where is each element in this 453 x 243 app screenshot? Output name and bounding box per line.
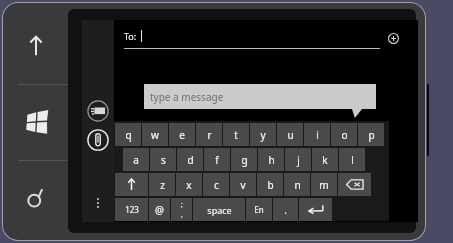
staticText: e	[179, 128, 185, 142]
staticText: v	[240, 178, 246, 192]
staticText: f	[215, 153, 219, 167]
button[interactable]: k	[312, 148, 338, 171]
staticText: w	[151, 128, 159, 142]
button[interactable]: s	[150, 148, 176, 171]
staticText: k	[322, 153, 328, 167]
staticText: s	[161, 153, 166, 167]
button[interactable]: To:	[114, 26, 450, 54]
button[interactable]: h	[258, 148, 284, 171]
button[interactable]: a	[123, 148, 149, 171]
staticText: q	[125, 128, 132, 142]
button[interactable]: Add contact	[384, 29, 402, 47]
button[interactable]: Messaging	[85, 98, 111, 124]
staticText: 123	[125, 204, 139, 215]
button[interactable]: y	[250, 123, 276, 146]
button[interactable]: type a message	[144, 84, 376, 109]
staticText: p	[368, 128, 375, 142]
staticText: En	[254, 204, 264, 215]
button[interactable]: x	[176, 173, 202, 196]
button[interactable]: .	[273, 198, 298, 221]
button[interactable]: r	[196, 123, 222, 146]
staticText: t	[234, 128, 238, 142]
button[interactable]: j	[285, 148, 311, 171]
staticText: i	[316, 128, 319, 142]
button[interactable]: t	[223, 123, 249, 146]
staticText: ,	[181, 210, 183, 220]
staticText: .	[284, 203, 287, 217]
button[interactable]: 123	[115, 198, 148, 221]
staticText: ;	[181, 200, 183, 210]
button[interactable]: Start	[6, 86, 66, 158]
button[interactable]: Back	[6, 10, 66, 82]
staticText: space	[207, 204, 232, 216]
button[interactable]: p	[358, 123, 384, 146]
staticText: @	[155, 203, 164, 217]
button[interactable]: space	[193, 198, 245, 221]
staticText: b	[267, 178, 274, 192]
staticText: m	[319, 178, 329, 192]
staticText: u	[287, 128, 294, 142]
staticText: To:	[124, 30, 137, 42]
staticText: type a message	[150, 90, 224, 104]
button[interactable]: q	[115, 123, 141, 146]
button[interactable]: More options	[85, 190, 111, 216]
button[interactable]: d	[177, 148, 203, 171]
button[interactable]: b	[257, 173, 283, 196]
button[interactable]: Semicolon and comma	[171, 198, 192, 221]
button[interactable]: w	[142, 123, 168, 146]
button[interactable]: Enter	[299, 198, 332, 221]
staticText: d	[187, 153, 194, 167]
staticText: j	[297, 153, 300, 167]
button[interactable]: g	[231, 148, 257, 171]
button[interactable]: m	[311, 173, 337, 196]
staticText: h	[268, 153, 275, 167]
staticText: g	[241, 153, 248, 167]
staticText: n	[294, 178, 301, 192]
button[interactable]: o	[331, 123, 357, 146]
button[interactable]: Shift	[115, 173, 148, 196]
staticText: a	[133, 153, 139, 167]
button[interactable]: Backspace	[338, 173, 371, 196]
button[interactable]: l	[339, 148, 365, 171]
button[interactable]: @	[149, 198, 170, 221]
button[interactable]: Attach	[85, 127, 111, 153]
button[interactable]: Search	[6, 162, 66, 234]
button[interactable]: z	[149, 173, 175, 196]
button[interactable]: v	[230, 173, 256, 196]
button[interactable]: f	[204, 148, 230, 171]
staticText: r	[207, 128, 212, 142]
staticText: c	[214, 178, 219, 192]
button[interactable]: u	[277, 123, 303, 146]
staticText: z	[160, 178, 165, 192]
button[interactable]: c	[203, 173, 229, 196]
staticText: o	[341, 128, 348, 142]
button[interactable]: i	[304, 123, 330, 146]
staticText: l	[351, 153, 354, 167]
staticText: y	[260, 128, 266, 142]
staticText: x	[186, 178, 192, 192]
button[interactable]: n	[284, 173, 310, 196]
button[interactable]: e	[169, 123, 195, 146]
button[interactable]: En	[246, 198, 272, 221]
